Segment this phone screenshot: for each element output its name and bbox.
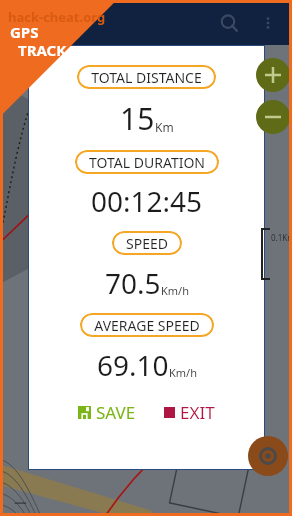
staticText: 00:12:45 bbox=[91, 182, 203, 220]
staticText: EXIT bbox=[180, 401, 215, 424]
button[interactable]: TOTAL DURATION bbox=[75, 150, 219, 174]
staticText: 70.5 bbox=[105, 264, 161, 302]
staticText: 15 bbox=[120, 98, 155, 139]
button[interactable]: Center location bbox=[248, 436, 288, 476]
staticText: Km/h bbox=[169, 365, 197, 380]
button[interactable]: Zoom out bbox=[256, 100, 290, 134]
staticText: SPEED bbox=[126, 234, 168, 253]
staticText: Km/h bbox=[161, 283, 189, 298]
staticText: TOTAL DISTANCE bbox=[91, 68, 202, 87]
button[interactable]: More options bbox=[252, 7, 284, 39]
button[interactable]: EXIT bbox=[160, 397, 219, 428]
button[interactable]: Zoom in bbox=[256, 58, 290, 92]
button[interactable]: SAVE bbox=[74, 397, 140, 428]
staticText: SAVE bbox=[96, 401, 136, 424]
staticText: TRACK bbox=[18, 40, 67, 60]
staticText: TOTAL DURATION bbox=[89, 153, 205, 172]
staticText: AVERAGE SPEED bbox=[94, 316, 200, 335]
button[interactable]: SPEED bbox=[112, 231, 182, 255]
button[interactable]: AVERAGE SPEED bbox=[80, 313, 214, 337]
staticText: hack-cheat.org bbox=[8, 8, 106, 26]
button[interactable]: Search bbox=[212, 6, 246, 40]
staticText: Km bbox=[155, 119, 174, 135]
staticText: 69.10 bbox=[97, 346, 169, 384]
staticText: 0.1Km bbox=[271, 232, 292, 243]
button[interactable]: TOTAL DISTANCE bbox=[77, 65, 216, 89]
staticText: GPS bbox=[10, 22, 39, 42]
